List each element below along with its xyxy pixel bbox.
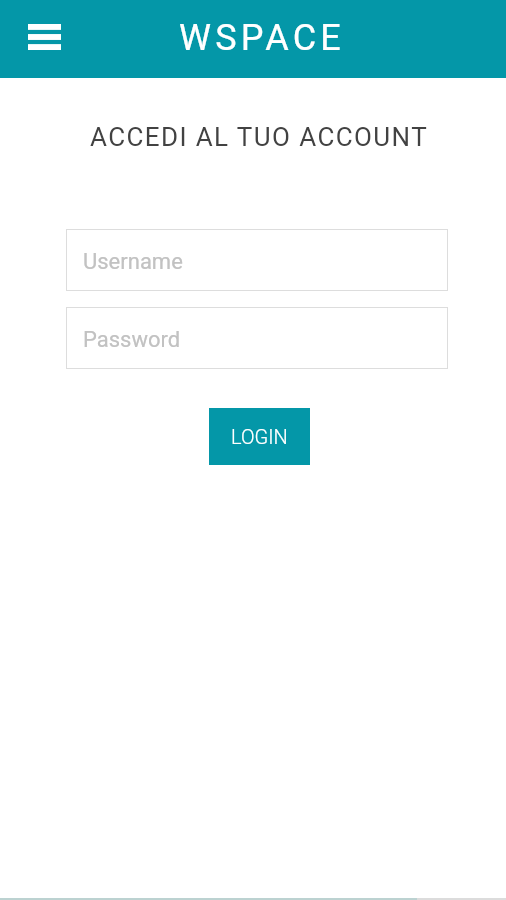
- staticText: Username: [83, 249, 183, 275]
- staticText: ACCEDI AL TUO ACCOUNT: [6, 122, 506, 152]
- button[interactable]: Password: [67, 308, 447, 368]
- staticText: Password: [83, 327, 181, 353]
- button[interactable]: LOGIN: [209, 408, 310, 465]
- button[interactable]: Username: [67, 230, 447, 290]
- button[interactable]: Open navigation menu: [11, 9, 77, 65]
- staticText: WSPACE: [179, 17, 345, 59]
- staticText: LOGIN: [231, 425, 288, 448]
